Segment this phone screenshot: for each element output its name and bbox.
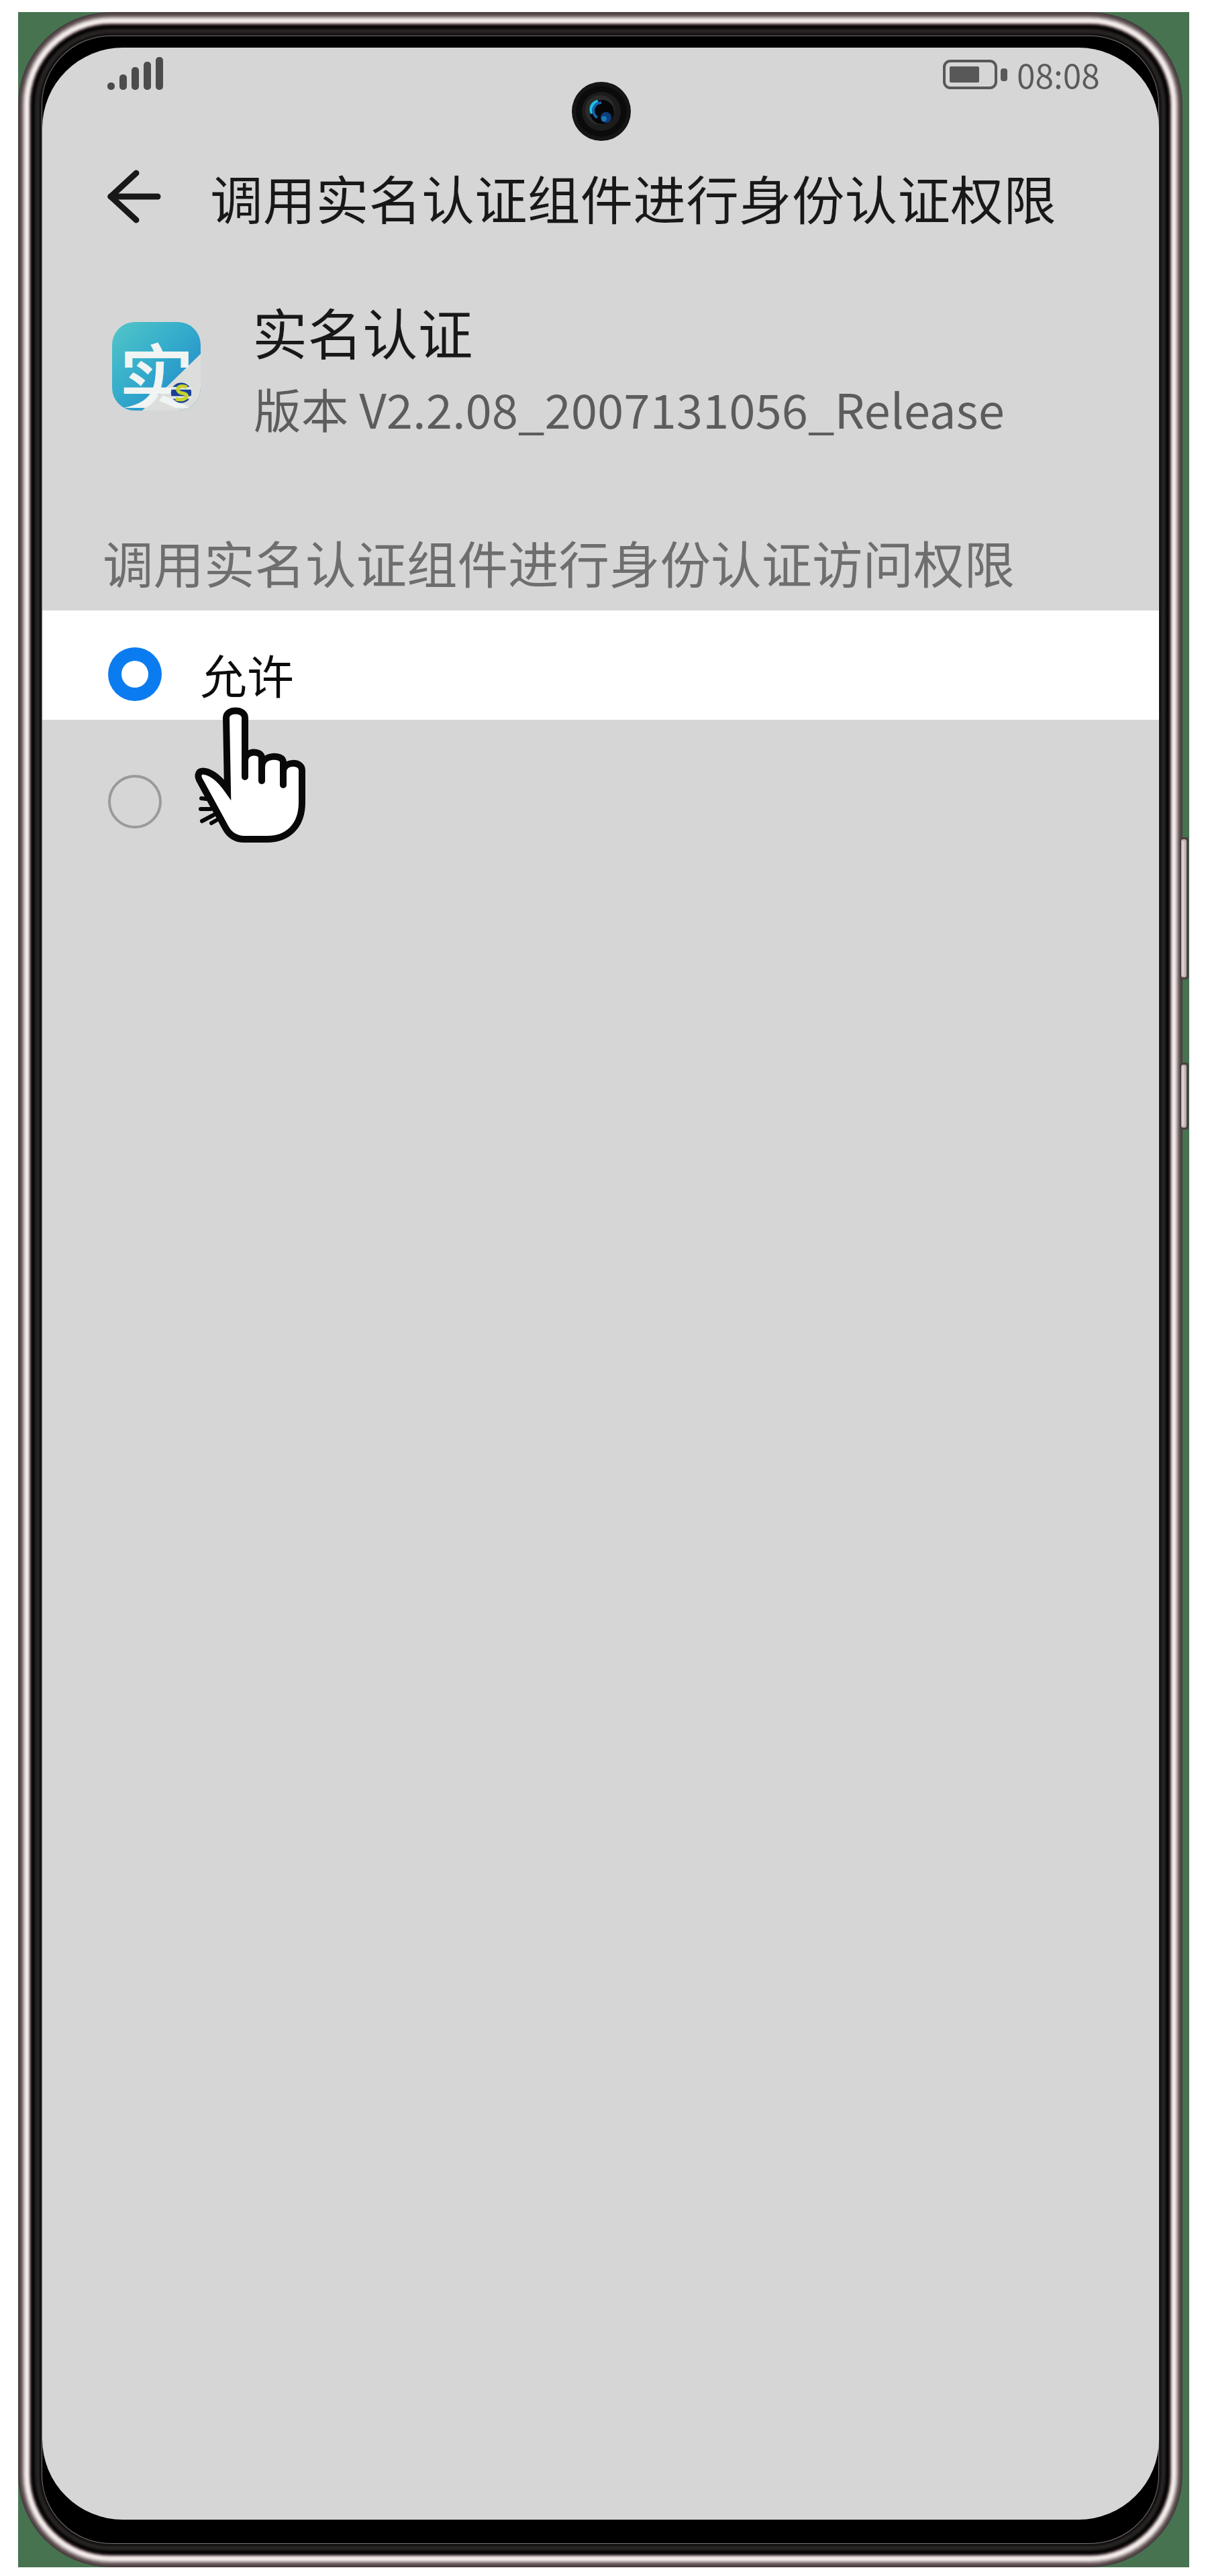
staticText: 实 bbox=[119, 322, 195, 408]
button[interactable]: 禁止 bbox=[42, 720, 1159, 829]
staticText: 允许 bbox=[200, 640, 294, 708]
staticText: 实名认证 bbox=[252, 291, 473, 371]
staticText: 版本 V2.2.08_2007131056_Release bbox=[254, 374, 1005, 442]
staticText: 08:08 bbox=[1017, 50, 1100, 98]
staticText: 调用实名认证组件进行身份认证访问权限 bbox=[103, 525, 1015, 598]
button[interactable]: 允许 bbox=[42, 610, 1159, 720]
button[interactable]: Back bbox=[94, 154, 181, 241]
staticText: 调用实名认证组件进行身份认证权限 bbox=[210, 159, 1056, 235]
